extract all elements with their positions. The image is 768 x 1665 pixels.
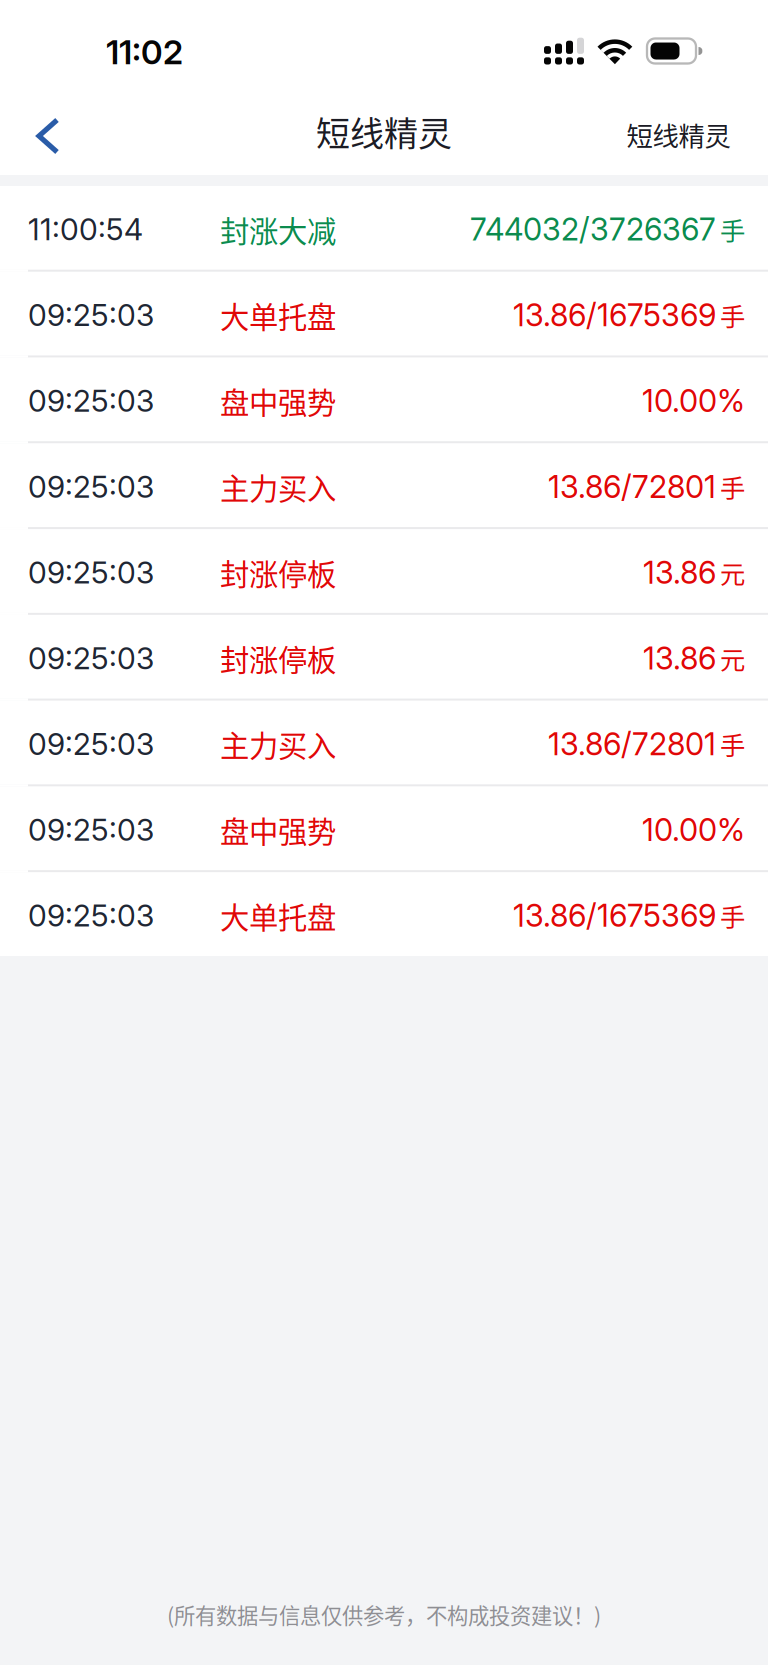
button[interactable]: 09:25:03 — [0, 272, 768, 356]
staticText: 09:25:03 — [28, 897, 154, 934]
staticText: 13.86/1675369 — [513, 897, 716, 934]
staticText: 13.86/1675369 — [513, 297, 716, 334]
staticText: 短线精灵 — [626, 115, 730, 154]
staticText: 手 — [720, 297, 745, 333]
button[interactable]: 短线精灵 — [602, 88, 768, 175]
staticText: 13.86 — [643, 554, 716, 591]
staticText: 手 — [720, 726, 745, 762]
staticText: 封涨停板 — [220, 637, 336, 680]
staticText: 大单托盘 — [220, 294, 336, 336]
button[interactable]: 09:25:03 — [0, 529, 768, 613]
button[interactable]: 09:25:03 — [0, 615, 768, 699]
button[interactable]: 09:25:03 — [0, 701, 768, 784]
staticText: 13.86/72801 — [548, 725, 716, 763]
staticText: 13.86/72801 — [548, 468, 716, 505]
staticText: 09:25:03 — [28, 554, 154, 591]
staticText: 09:25:03 — [28, 726, 154, 762]
staticText: 10.00% — [642, 382, 745, 419]
staticText: 封涨大减 — [220, 208, 336, 251]
staticText: 13.86 — [643, 640, 716, 677]
button[interactable]: 09:25:03 — [0, 872, 768, 956]
staticText: 09:25:03 — [28, 469, 154, 505]
staticText: 09:25:03 — [28, 640, 154, 676]
staticText: 09:25:03 — [28, 297, 154, 333]
staticText: 手 — [720, 468, 745, 505]
staticText: 封涨停板 — [220, 551, 336, 594]
button[interactable]: 返回 — [0, 88, 87, 175]
staticText: 主力买入 — [220, 465, 336, 508]
staticText: 大单托盘 — [220, 894, 336, 937]
button[interactable]: 09:25:03 — [0, 786, 768, 870]
staticText: 手 — [720, 211, 745, 248]
staticText: 09:25:03 — [28, 383, 154, 419]
button[interactable]: 09:25:03 — [0, 358, 768, 441]
staticText: 09:25:03 — [28, 812, 154, 848]
staticText: 11:02 — [106, 32, 183, 72]
staticText: 手 — [720, 897, 745, 934]
staticText: 盘中强势 — [220, 380, 336, 422]
staticText: 主力买入 — [220, 723, 336, 765]
staticText: 元 — [720, 554, 745, 591]
staticText: 盘中强势 — [220, 809, 336, 851]
staticText: 元 — [720, 640, 745, 677]
button[interactable]: 11:00:54 — [0, 186, 768, 270]
staticText: 短线精灵 — [316, 107, 452, 156]
staticText: 11:00:54 — [28, 211, 143, 247]
staticText: 10.00% — [642, 811, 745, 848]
staticText: (所有数据与信息仅供参考，不构成投资建议！) — [167, 1599, 601, 1630]
button[interactable]: 09:25:03 — [0, 443, 768, 527]
staticText: 744032/3726367 — [470, 211, 716, 248]
